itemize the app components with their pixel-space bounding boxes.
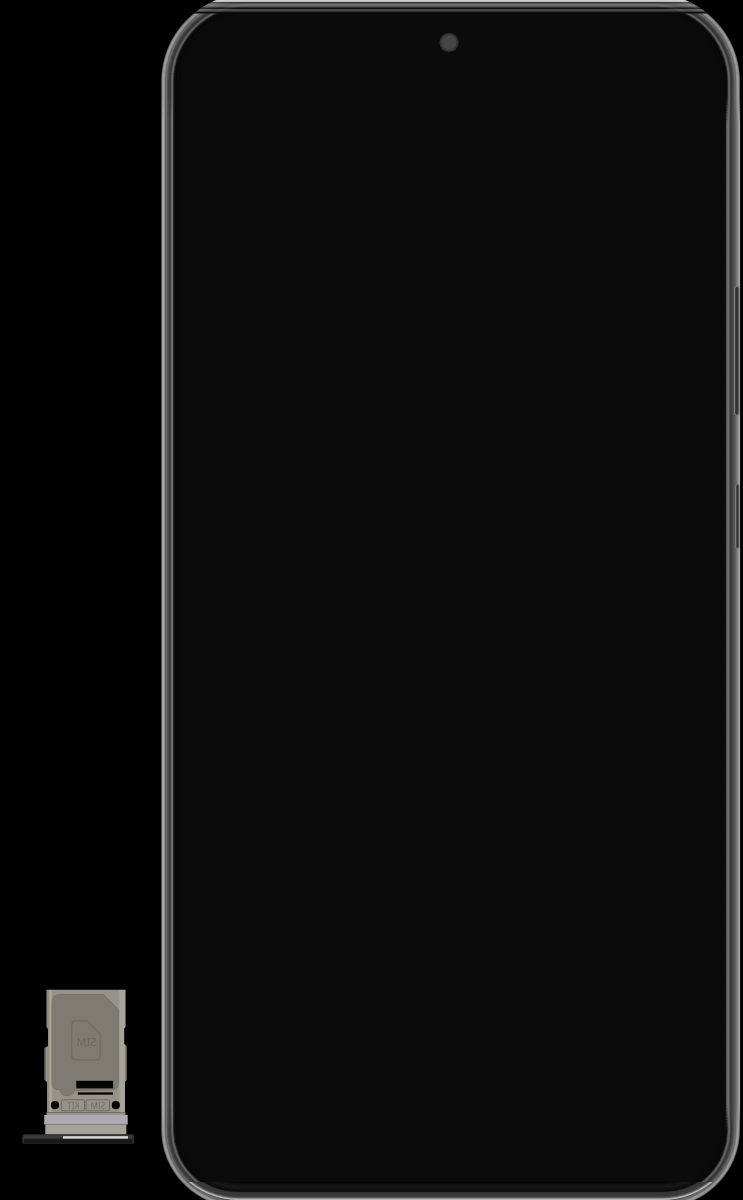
button[interactable]: SIM card tray [22, 989, 135, 1145]
button[interactable]: Power [735, 484, 742, 549]
button[interactable]: Volume [734, 286, 742, 416]
